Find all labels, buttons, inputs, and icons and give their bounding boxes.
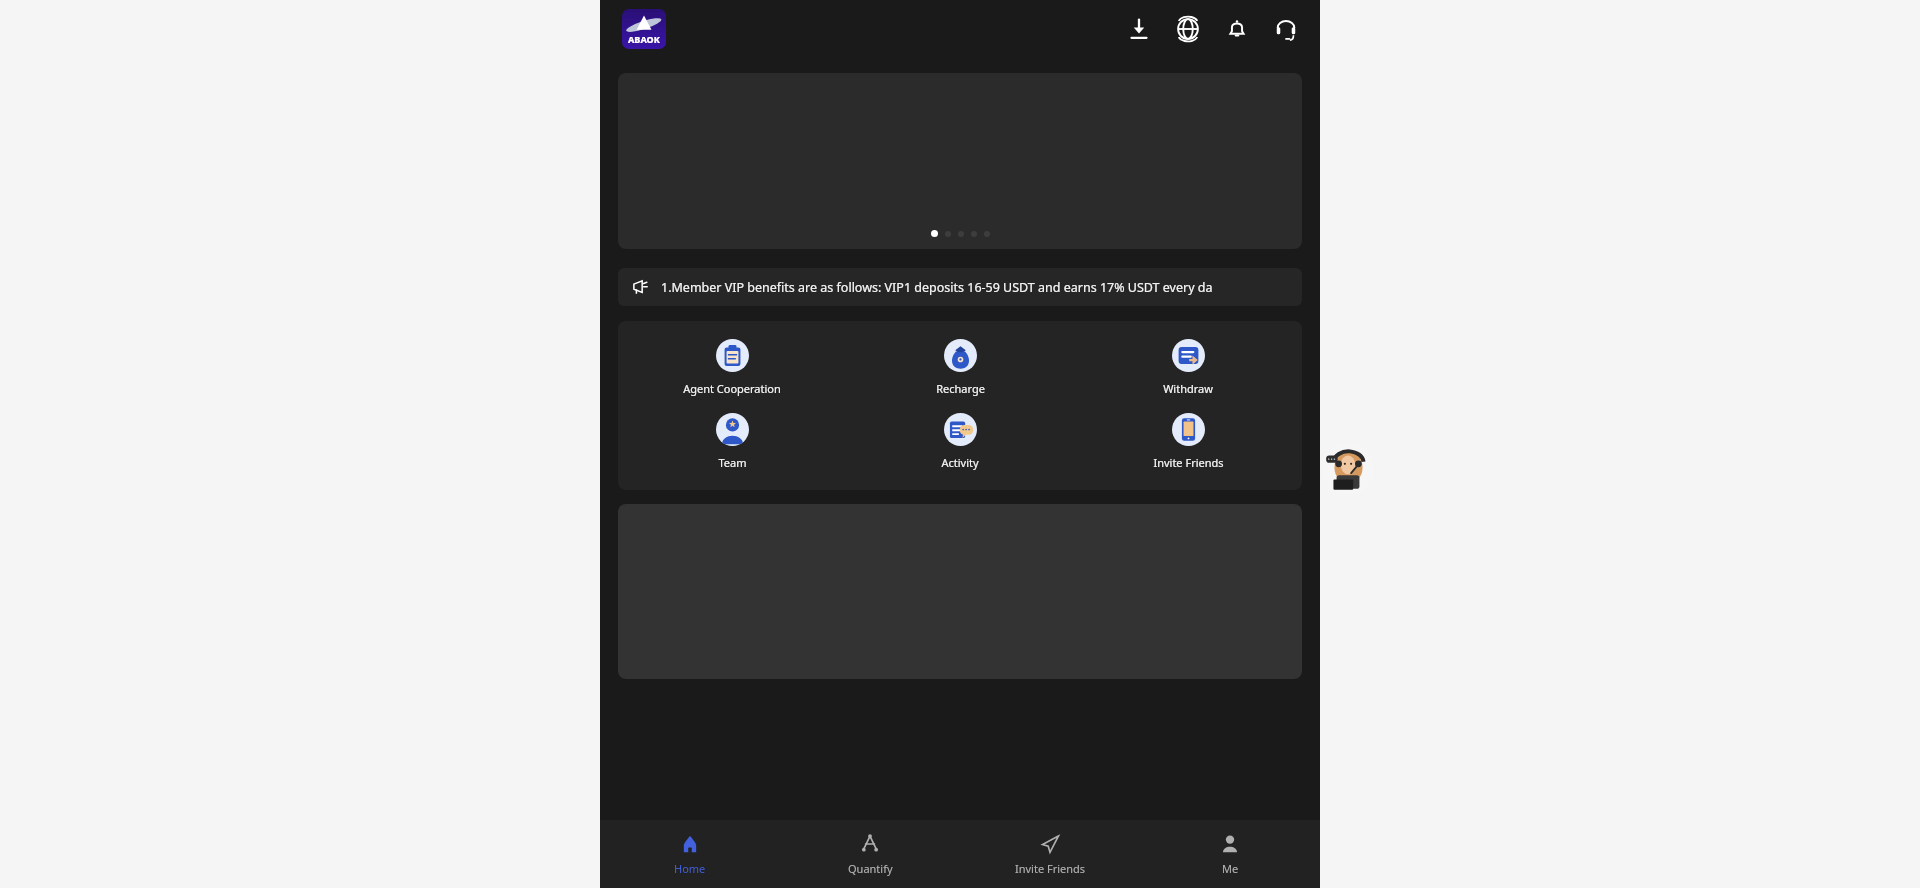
staticText: 1.Member VIP benefits are as follows: VI… <box>661 279 1213 296</box>
button[interactable]: Download <box>1125 15 1153 43</box>
button[interactable]: 1.Member VIP benefits are as follows: VI… <box>618 268 1302 306</box>
staticText: Agent Cooperation <box>683 381 781 396</box>
button[interactable]: Team <box>618 411 846 472</box>
button[interactable]: Recharge <box>846 337 1074 398</box>
staticText: ABAOK <box>628 33 660 45</box>
button[interactable]: Activity <box>846 411 1074 472</box>
staticText: Invite Friends <box>1015 861 1086 876</box>
button[interactable]: Me <box>1140 820 1320 888</box>
staticText: Recharge <box>936 381 985 396</box>
staticText: Invite Friends <box>1153 455 1224 470</box>
button[interactable]: Customer service <box>1322 443 1374 495</box>
staticText: Withdraw <box>1163 381 1213 396</box>
staticText: Home <box>674 861 706 876</box>
button[interactable]: Withdraw <box>1074 337 1302 398</box>
staticText: Team <box>718 455 747 470</box>
button[interactable] <box>618 73 1302 249</box>
button[interactable]: Invite Friends <box>960 820 1140 888</box>
button[interactable]: Home <box>600 820 780 888</box>
staticText: Me <box>1222 861 1239 876</box>
button[interactable]: Invite Friends <box>1074 411 1302 472</box>
button[interactable]: Notifications <box>1223 15 1251 43</box>
staticText: Activity <box>941 455 979 470</box>
staticText: Quantify <box>848 861 893 876</box>
button[interactable]: Support <box>1272 15 1300 43</box>
button[interactable]: Quantify <box>780 820 960 888</box>
button[interactable]: Agent Cooperation <box>618 337 846 398</box>
button[interactable]: Language <box>1174 15 1202 43</box>
button[interactable]: ABAOK logo <box>622 9 666 49</box>
